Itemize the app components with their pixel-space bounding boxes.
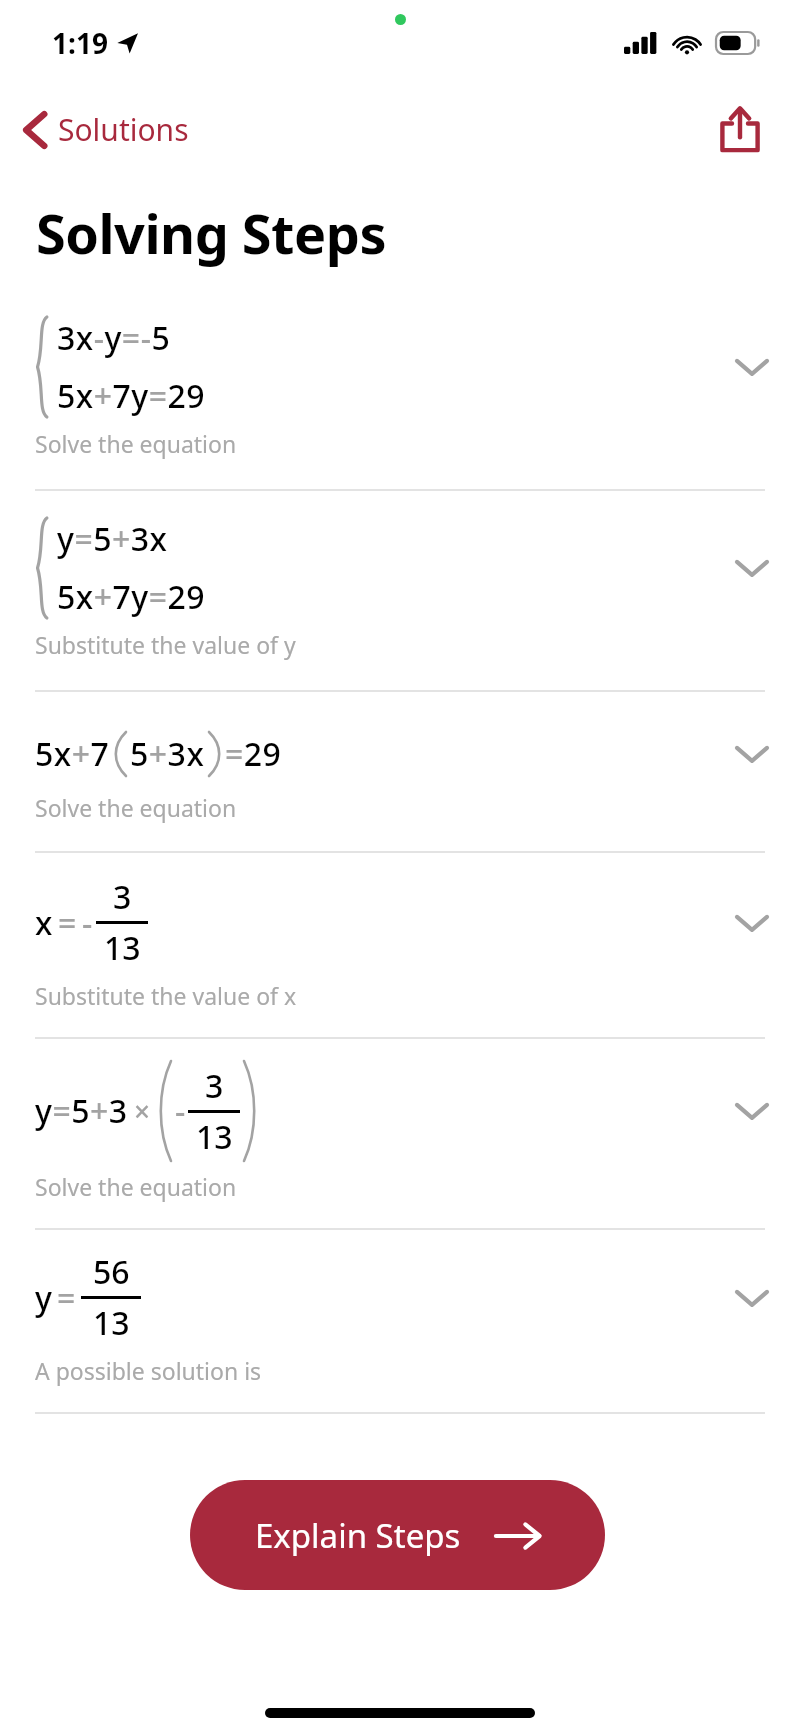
staticText: = [58,901,77,945]
staticText: =29 [225,732,282,776]
staticText: 3x-y=-5 [57,316,171,360]
button[interactable]: Expand step [724,726,780,782]
staticText: × [134,1092,151,1130]
staticText: y=5+3x [57,517,168,561]
button[interactable]: y [0,1230,800,1412]
staticText: 5x+7y=29 [57,575,206,619]
staticText: A possible solution is [35,1355,262,1386]
staticText: 13 [93,1301,130,1345]
staticText: 3 [113,875,132,919]
button[interactable]: Expand step [724,1270,780,1326]
staticText: 5x+7 [35,732,110,776]
staticText: 5x+7y=29 [57,374,206,418]
staticText: Solve the equation [35,1171,237,1202]
staticText: Explain Steps [255,1513,461,1558]
button[interactable]: Explain Steps [190,1480,605,1590]
staticText: Substitute the value of x [35,980,297,1011]
button[interactable]: y=5+3 [0,1039,800,1228]
button[interactable]: y=5+3x [0,491,800,690]
button[interactable]: Expand step [724,540,780,596]
staticText: y [35,1276,52,1320]
button[interactable]: Expand step [724,895,780,951]
staticText: x [35,901,53,945]
staticText: 56 [93,1250,130,1294]
button[interactable]: 3x-y=-5 [0,316,800,489]
staticText: - [82,901,93,945]
button[interactable]: Share [708,97,772,161]
staticText: y=5+3 [35,1089,128,1133]
staticText: Solve the equation [35,792,237,823]
staticText: 5+3x [130,732,205,776]
staticText: 13 [104,926,141,970]
button[interactable]: Expand step [724,1083,780,1139]
staticText: 13 [196,1115,233,1159]
staticText: - [175,1089,186,1133]
staticText: = [57,1276,76,1320]
button[interactable]: Expand step [724,339,780,395]
staticText: Substitute the value of y [35,629,296,660]
staticText: Solving Steps [36,196,387,270]
staticText: Solve the equation [35,428,237,459]
button[interactable]: 5x+7 [0,692,800,851]
button[interactable]: Solutions [18,103,195,156]
staticText: Solutions [58,109,189,150]
button[interactable]: x [0,853,800,1037]
staticText: 3 [205,1064,224,1108]
staticText: 1:19 [52,24,108,62]
